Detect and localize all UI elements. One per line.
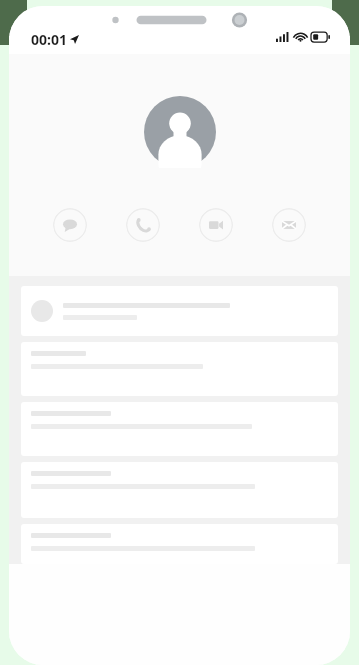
button[interactable]: Email bbox=[272, 208, 306, 242]
button[interactable]: Video call bbox=[199, 208, 233, 242]
button[interactable] bbox=[21, 462, 338, 518]
button[interactable] bbox=[21, 524, 338, 564]
staticText: 00:01 bbox=[31, 30, 67, 49]
button[interactable] bbox=[21, 402, 338, 456]
button[interactable] bbox=[21, 286, 338, 336]
button[interactable] bbox=[21, 342, 338, 396]
button[interactable]: Call bbox=[126, 208, 160, 242]
button[interactable]: Message bbox=[53, 208, 87, 242]
